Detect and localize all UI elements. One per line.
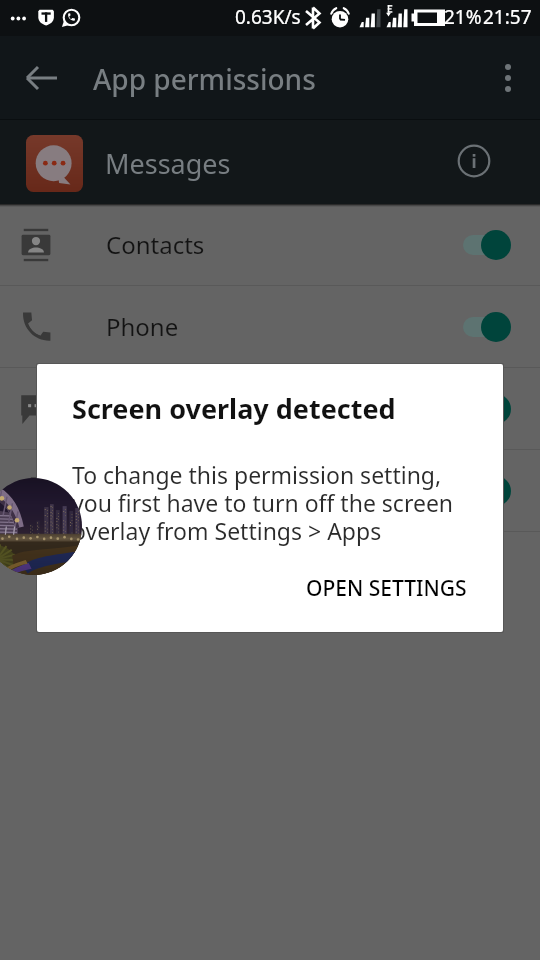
staticText: Messages — [105, 145, 231, 182]
button[interactable]: Messages — [0, 120, 540, 204]
staticText: SMS — [106, 392, 155, 425]
button[interactable]: More options — [484, 54, 532, 102]
staticText: OPEN SETTINGS — [306, 574, 467, 603]
button[interactable]: OPEN SETTINGS — [286, 560, 487, 617]
staticText: 0.63K/s — [235, 4, 301, 30]
staticText: To change this permission setting, you f… — [72, 459, 454, 547]
staticText: 21% — [444, 4, 482, 30]
staticText: Contacts — [106, 228, 205, 261]
button[interactable]: Floating bubble — [0, 478, 82, 575]
button[interactable]: Back — [18, 54, 66, 102]
staticText: App permissions — [93, 60, 316, 98]
staticText: 21:57 — [483, 4, 532, 30]
button[interactable]: Phone — [0, 286, 540, 367]
staticText: Screen overlay detected — [72, 390, 396, 427]
button[interactable]: SMS — [0, 368, 540, 449]
staticText: Phone — [106, 310, 179, 343]
button[interactable]: App info — [452, 139, 496, 183]
button[interactable]: Contacts — [0, 204, 540, 285]
button[interactable]: Camera — [0, 450, 540, 531]
staticText: Camera — [106, 474, 194, 507]
